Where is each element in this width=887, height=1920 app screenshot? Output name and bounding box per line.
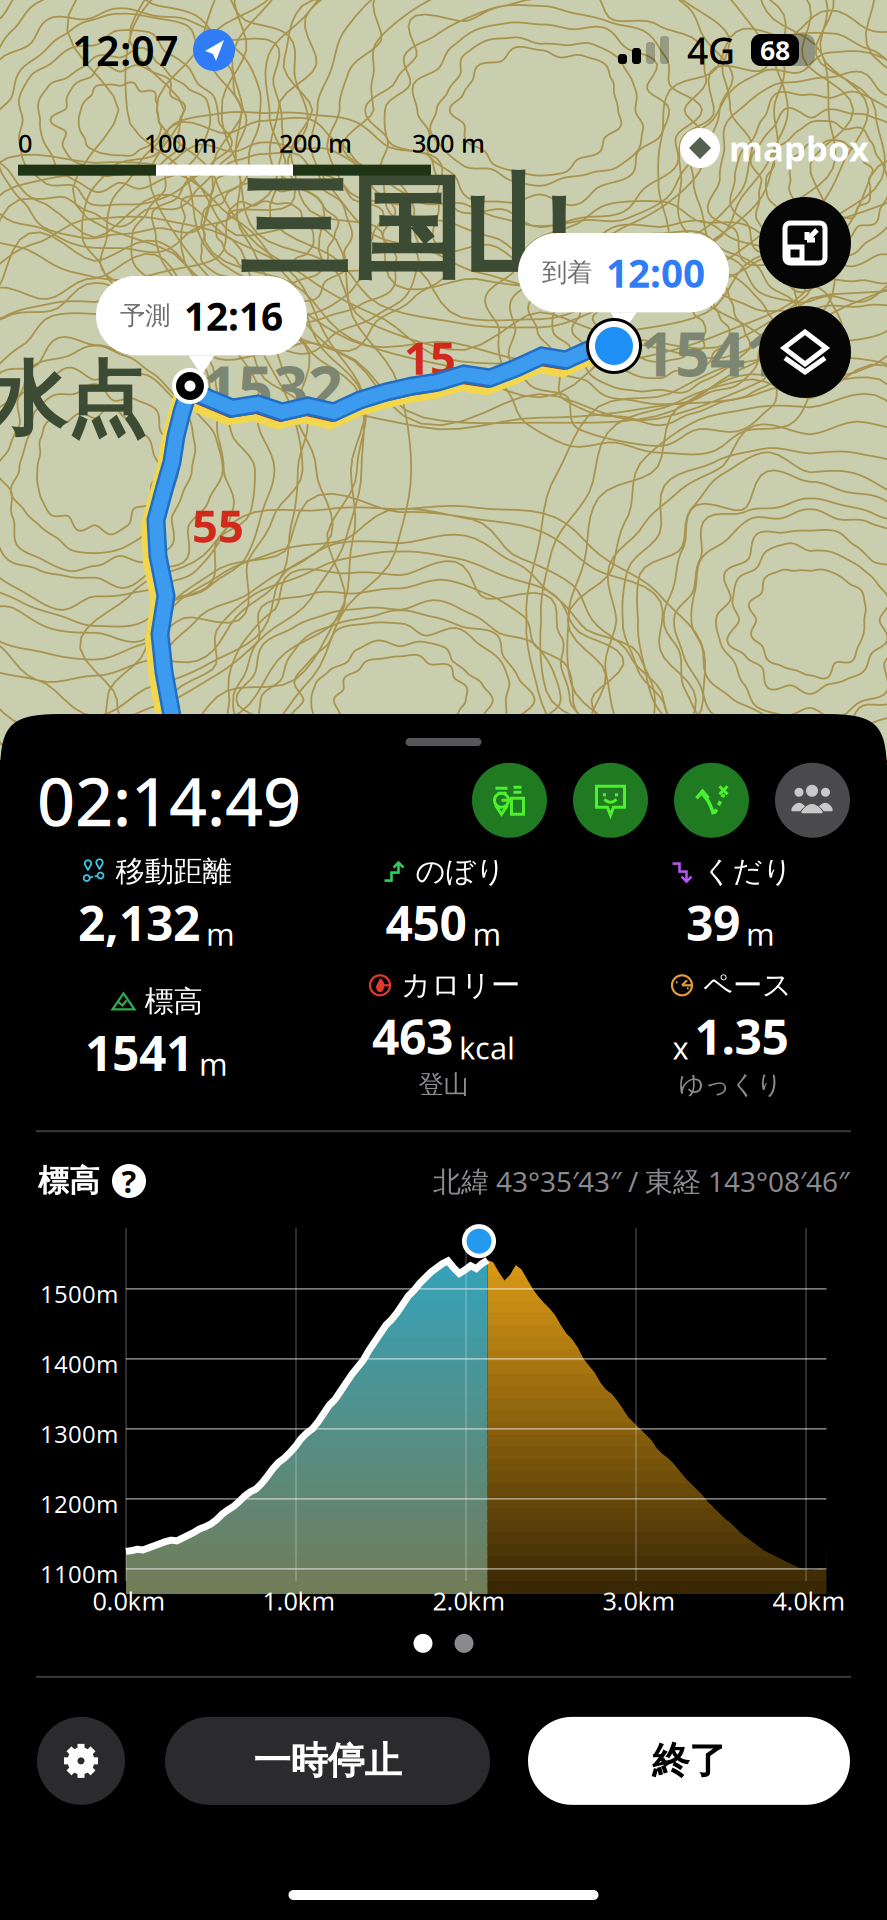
staticText: 0.0km xyxy=(92,1584,165,1617)
staticText: 1.0km xyxy=(262,1584,335,1617)
staticText: 12:00 xyxy=(606,247,705,298)
staticText: 1500m xyxy=(40,1278,118,1310)
button[interactable]: 地図を縮小 xyxy=(759,197,851,289)
staticText: 3.0km xyxy=(602,1584,675,1617)
staticText: 2,132 xyxy=(78,891,200,954)
staticText: くだり xyxy=(702,853,792,889)
staticText: 55 xyxy=(192,495,244,555)
staticText: m xyxy=(746,914,775,954)
staticText: 15 xyxy=(404,327,456,387)
staticText: 1541 xyxy=(85,1020,193,1084)
staticText: 三国山 xyxy=(238,160,574,298)
staticText: mapbox xyxy=(729,125,869,171)
staticText: ゆっくり xyxy=(678,1069,782,1100)
staticText: 12:07 xyxy=(72,23,179,77)
button[interactable]: メンバー xyxy=(775,763,850,838)
staticText: ? xyxy=(121,1161,136,1201)
button[interactable]: 設定 xyxy=(37,1717,125,1805)
staticText: 39 xyxy=(686,891,740,954)
staticText: x xyxy=(672,1027,688,1068)
staticText: 登山 xyxy=(418,1069,468,1100)
staticText: 12:16 xyxy=(184,290,283,341)
button[interactable]: ヘルプ xyxy=(112,1164,146,1198)
staticText: 68 xyxy=(760,32,790,68)
staticText: m xyxy=(199,1043,228,1084)
staticText: 水点 xyxy=(0,351,146,449)
staticText: m xyxy=(206,914,235,954)
staticText: 450 xyxy=(385,891,466,954)
staticText: 標高 xyxy=(38,1162,100,1200)
button[interactable]: ランドマーク xyxy=(472,763,547,838)
staticText: 北緯 43°35′43″ / 東経 143°08′46″ xyxy=(433,1162,849,1200)
staticText: 1400m xyxy=(40,1348,118,1380)
staticText: 4G xyxy=(687,25,735,75)
staticText: 一時停止 xyxy=(253,1738,401,1784)
staticText: 200 m xyxy=(279,126,352,160)
staticText: 移動距離 xyxy=(115,853,231,889)
staticText: 到着 xyxy=(542,257,592,288)
button[interactable]: 終了 xyxy=(528,1717,850,1805)
staticText: ペース xyxy=(703,967,792,1003)
staticText: 2.0km xyxy=(432,1584,505,1617)
staticText: m xyxy=(472,914,501,954)
button[interactable]: ルート xyxy=(674,763,749,838)
staticText: 終了 xyxy=(652,1738,726,1784)
staticText: 463 xyxy=(372,1004,453,1068)
staticText: 予測 xyxy=(120,300,170,331)
staticText: カロリー xyxy=(401,967,520,1003)
staticText: 標高 xyxy=(144,983,202,1019)
button[interactable]: メモ xyxy=(573,763,648,838)
staticText: kcal xyxy=(459,1027,515,1068)
staticText: 1200m xyxy=(40,1488,118,1520)
staticText: のぼり xyxy=(415,853,505,889)
staticText: 300 m xyxy=(412,126,485,160)
staticText: 1541 xyxy=(640,312,780,393)
staticText: 1300m xyxy=(40,1418,118,1450)
staticText: 0 xyxy=(18,126,32,160)
staticText: 100 m xyxy=(144,126,217,160)
staticText: 4.0km xyxy=(772,1584,845,1617)
staticText: 02:14:49 xyxy=(37,756,301,844)
staticText: 1.35 xyxy=(694,1004,788,1068)
button[interactable]: 地図レイヤー xyxy=(759,306,851,398)
staticText: 1532 xyxy=(203,346,343,427)
button[interactable]: 一時停止 xyxy=(165,1717,490,1805)
staticText: 1100m xyxy=(40,1558,118,1590)
